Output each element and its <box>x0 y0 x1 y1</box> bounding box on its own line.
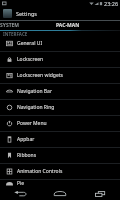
button[interactable]: Settings app icon <box>3 9 12 18</box>
button[interactable]: Power Menu <box>0 116 120 132</box>
button[interactable]: Pie <box>0 180 120 187</box>
staticText: Settings <box>16 10 37 17</box>
button[interactable]: Recent apps <box>80 187 120 200</box>
staticText: Navigation Ring <box>17 104 55 111</box>
button[interactable]: Appbar <box>0 132 120 148</box>
button[interactable]: Lockscreen widgets <box>0 68 120 84</box>
staticText: Appbar <box>17 136 35 143</box>
staticText: Navigation Bar <box>17 88 52 95</box>
staticText: General UI <box>17 40 43 47</box>
button[interactable]: Ribbons <box>0 148 120 164</box>
staticText: Pie <box>17 180 25 187</box>
button[interactable]: Navigation Bar <box>0 84 120 100</box>
button[interactable]: Animation Controls <box>0 164 120 180</box>
staticText: Power Menu <box>17 120 47 127</box>
staticText: Animation Controls <box>17 168 63 175</box>
staticText: Ribbons <box>17 152 37 159</box>
button[interactable]: General UI <box>0 36 120 52</box>
staticText: Lockscreen <box>17 56 44 63</box>
button[interactable]: PAC-MAN <box>56 21 80 30</box>
staticText: PAC-MAN <box>56 22 80 29</box>
button[interactable]: Navigation Ring <box>0 100 120 116</box>
button[interactable]: Home <box>40 187 80 200</box>
staticText: INTERFACE <box>3 31 28 36</box>
button[interactable]: Lockscreen <box>0 52 120 68</box>
button[interactable]: Back <box>0 187 40 200</box>
staticText: SYSTEM <box>0 22 20 29</box>
button[interactable]: SYSTEM <box>0 21 20 30</box>
staticText: 23:26 <box>104 0 119 7</box>
staticText: Lockscreen widgets <box>17 72 63 79</box>
